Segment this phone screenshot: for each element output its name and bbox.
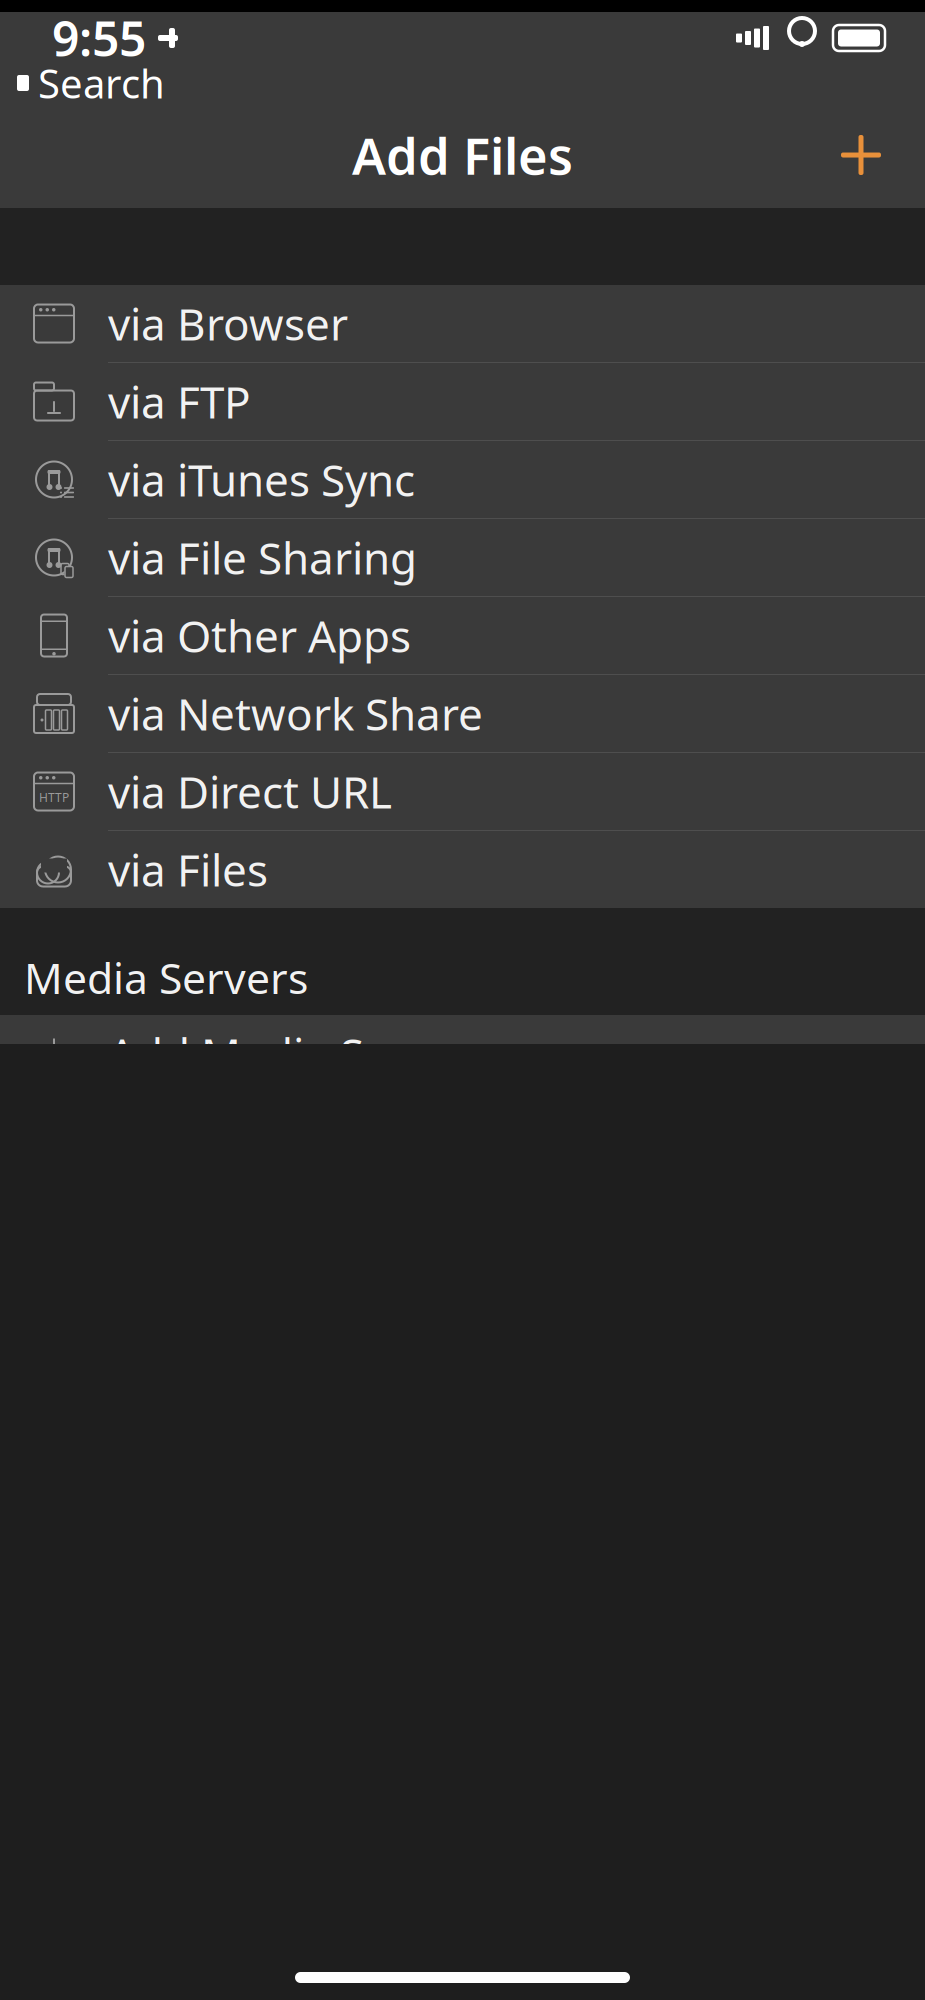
staticText: Search [38,56,165,109]
button[interactable]: via Files [0,831,925,908]
staticText: via iTunes Sync [108,450,415,509]
button[interactable]: via iTunes Sync [0,441,925,518]
button[interactable]: via Other Apps [0,597,925,674]
button[interactable]: Add Media Server [0,1015,925,1092]
staticText: via FTP [108,372,251,431]
button[interactable]: via Browser [0,285,925,362]
button[interactable]: HTTP [0,753,925,830]
button[interactable]: via FTP [0,363,925,440]
staticText: HTTP [39,789,69,805]
staticText: Media Servers [24,949,308,1006]
staticText: via Browser [108,294,348,353]
staticText: Add Media Server [108,1024,472,1083]
staticText: via Direct URL [108,762,392,821]
staticText: via Network Share [108,684,483,743]
button[interactable]: Search [0,52,165,113]
button[interactable]: Close [829,123,893,187]
staticText: via File Sharing [108,528,417,587]
button[interactable]: via File Sharing [0,519,925,596]
staticText: Add Files [352,121,573,189]
staticText: via Files [108,840,268,899]
staticText: via Other Apps [108,606,411,665]
button[interactable]: via Network Share [0,675,925,752]
staticText: 9:55 [52,6,146,70]
